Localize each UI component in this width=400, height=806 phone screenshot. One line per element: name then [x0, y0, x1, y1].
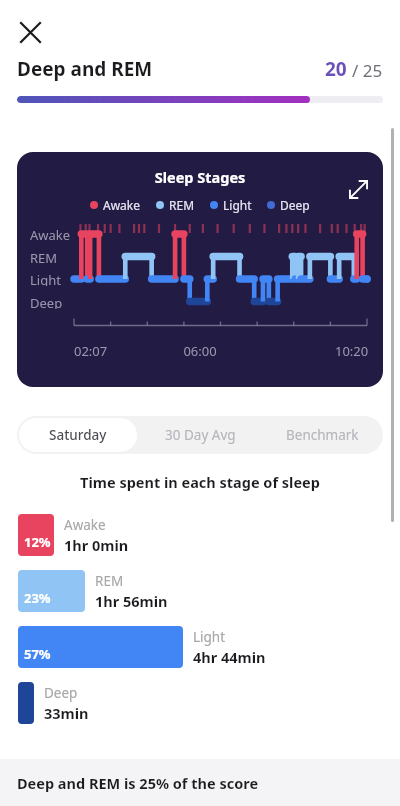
button[interactable]: Close	[8, 10, 52, 54]
staticText: Benchmark	[286, 426, 359, 444]
staticText: 1hr 56min	[95, 591, 168, 611]
button[interactable]: Saturday	[19, 418, 137, 452]
staticText: 30 Day Avg	[165, 426, 236, 444]
staticText: Light	[30, 271, 61, 286]
staticText: Awake	[30, 226, 71, 241]
staticText: Deep and REM	[17, 56, 153, 82]
button[interactable]: Deep and REM is 25% of the score	[0, 759, 400, 806]
button[interactable]: Expand chart	[339, 170, 377, 208]
staticText: 10:20	[335, 342, 369, 357]
staticText: Deep	[30, 294, 63, 309]
button[interactable]: 30 Day Avg	[139, 416, 261, 454]
staticText: 4hr 44min	[193, 647, 266, 667]
staticText: 20	[325, 56, 347, 82]
staticText: REM	[95, 572, 124, 590]
staticText: 1hr 0min	[64, 535, 129, 555]
staticText: 12%	[24, 533, 51, 551]
staticText: REM	[30, 249, 58, 264]
button[interactable]: 12%	[18, 514, 382, 556]
staticText: Deep	[44, 684, 78, 702]
staticText: Awake	[103, 197, 141, 213]
staticText: / 25	[352, 59, 383, 82]
staticText: REM	[169, 197, 195, 213]
staticText: Light	[193, 628, 226, 646]
staticText: Light	[223, 197, 252, 213]
button[interactable]: Benchmark	[261, 416, 383, 454]
staticText: Sleep Stages	[17, 167, 383, 187]
button[interactable]: 23%	[18, 570, 382, 612]
staticText: 02:07	[74, 342, 108, 357]
staticText: Awake	[64, 516, 106, 534]
staticText: 33min	[44, 703, 89, 723]
button[interactable]: 57%	[18, 626, 382, 668]
staticText: Deep and REM is 25% of the score	[17, 773, 259, 793]
button[interactable]: Deep	[18, 682, 382, 724]
staticText: Deep	[280, 197, 310, 213]
staticText: 06:00	[17, 342, 383, 357]
staticText: Saturday	[49, 426, 107, 444]
staticText: 23%	[24, 589, 51, 607]
staticText: 57%	[24, 645, 51, 663]
staticText: Time spent in each stage of sleep	[0, 472, 400, 492]
